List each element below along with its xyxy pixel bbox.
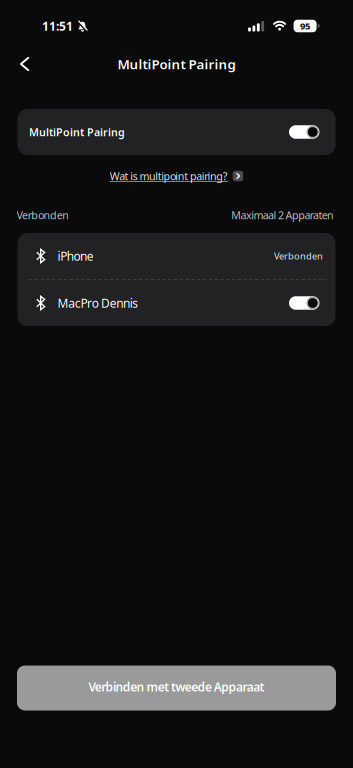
- staticText: 11:51: [42, 18, 73, 34]
- staticText: Verbonden: [16, 208, 69, 222]
- button[interactable]: MacPro Dennis: [17, 280, 335, 326]
- staticText: 95: [300, 20, 310, 32]
- button[interactable]: Verbinden met tweede Apparaat: [0, 665, 353, 710]
- staticText: MultiPoint Pairing: [29, 125, 125, 139]
- staticText: MacPro Dennis: [57, 295, 138, 311]
- button[interactable]: MultiPoint Pairing: [289, 125, 335, 139]
- staticText: Wat is multipoint pairing?: [110, 169, 228, 183]
- button[interactable]: Back: [0, 49, 29, 79]
- button[interactable]: iPhone: [17, 233, 335, 279]
- staticText: Maximaal 2 Apparaten: [231, 208, 334, 222]
- staticText: MultiPoint Pairing: [117, 55, 235, 73]
- staticText: iPhone: [57, 248, 94, 264]
- staticText: Verbinden met tweede Apparaat: [88, 679, 265, 695]
- staticText: Verbonden: [274, 250, 323, 262]
- button[interactable]: Wat is multipoint pairing?: [110, 166, 243, 186]
